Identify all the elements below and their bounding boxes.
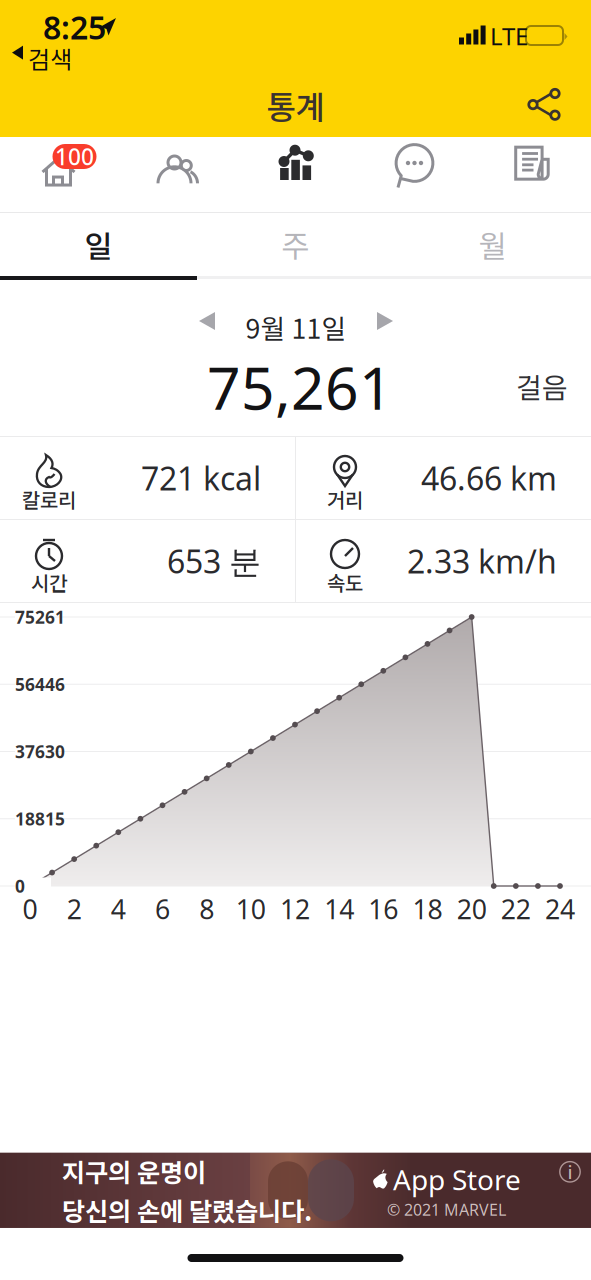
staticText: 721 kcal xyxy=(141,457,261,499)
staticText: 시간 xyxy=(31,567,67,596)
button[interactable]: 거리 xyxy=(296,437,591,519)
staticText: 8 xyxy=(199,891,214,927)
staticText: © 2021 MARVEL xyxy=(387,1199,506,1220)
staticText: 20 xyxy=(457,891,487,927)
button[interactable]: 속도 xyxy=(296,520,591,602)
button[interactable]: 시간 xyxy=(0,520,295,602)
staticText: 통계 xyxy=(266,82,324,128)
staticText: 주 xyxy=(281,222,309,267)
button[interactable]: 일 xyxy=(0,213,197,276)
staticText: 12 xyxy=(280,891,310,927)
staticText: 8:25 xyxy=(43,6,106,48)
staticText: 18815 xyxy=(15,807,65,830)
staticText: 0 xyxy=(22,891,37,927)
staticText: 월 xyxy=(478,222,506,267)
staticText: LTE xyxy=(490,20,528,52)
button[interactable]: Previous day xyxy=(184,300,230,342)
staticText: 75,261 xyxy=(207,348,393,426)
staticText: 37630 xyxy=(15,740,65,763)
button[interactable]: 월 xyxy=(394,213,591,276)
staticText: 당신의 손에 달렸습니다. xyxy=(62,1191,312,1228)
staticText: 100 xyxy=(55,141,94,171)
staticText: 걸음 xyxy=(516,366,568,406)
staticText: App Store xyxy=(393,1161,521,1198)
button[interactable]: Statistics xyxy=(236,137,354,212)
button[interactable]: 주 xyxy=(197,213,394,276)
staticText: 56446 xyxy=(15,673,65,696)
staticText: 4 xyxy=(111,891,126,927)
button[interactable]: More xyxy=(472,137,590,212)
staticText: 속도 xyxy=(327,567,363,596)
staticText: 24 xyxy=(545,891,575,927)
button[interactable]: 칼로리 xyxy=(0,437,295,519)
staticText: 75261 xyxy=(15,605,65,628)
staticText: 18 xyxy=(412,891,442,927)
staticText: 검색 xyxy=(28,41,72,75)
staticText: 2.33 km/h xyxy=(407,540,557,582)
button[interactable]: Chats xyxy=(354,137,472,212)
button[interactable]: Share xyxy=(515,76,575,137)
staticText: 22 xyxy=(501,891,531,927)
button[interactable]: Friends xyxy=(118,137,236,212)
staticText: 칼로리 xyxy=(22,484,76,513)
staticText: 10 xyxy=(236,891,266,927)
button[interactable]: Home, 100 unread xyxy=(0,137,118,212)
staticText: 14 xyxy=(324,891,354,927)
staticText: 지구의 운명이 xyxy=(62,1153,206,1189)
staticText: 2 xyxy=(67,891,82,927)
staticText: 9월 11일 xyxy=(245,308,346,346)
staticText: i xyxy=(567,1159,572,1184)
button[interactable]: Advertisement: 지구의 운명이 당신의 손에 달렸습니다. App… xyxy=(0,1153,591,1228)
staticText: 46.66 km xyxy=(421,457,557,499)
staticText: 일 xyxy=(84,222,112,267)
staticText: 16 xyxy=(368,891,398,927)
button[interactable]: Back to 검색 xyxy=(0,40,110,70)
staticText: 6 xyxy=(155,891,170,927)
staticText: 0 xyxy=(15,874,25,897)
button[interactable]: Next day xyxy=(362,300,408,342)
staticText: 거리 xyxy=(327,484,363,513)
staticText: 653 분 xyxy=(167,540,261,582)
